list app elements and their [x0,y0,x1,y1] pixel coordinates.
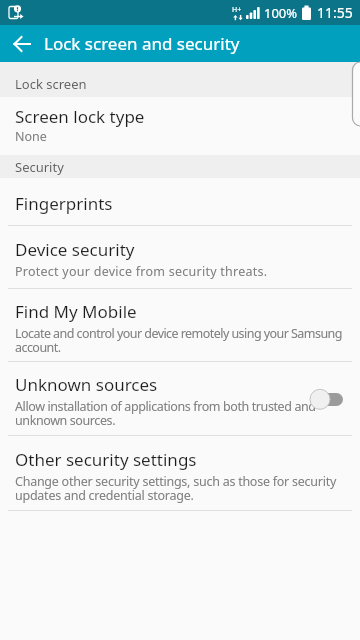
staticText: 11:55 [317,3,353,22]
staticText: Security [15,158,64,176]
button[interactable]: Fingerprints [0,178,360,225]
button[interactable] [0,25,44,62]
button[interactable]: Screen lock type [0,97,360,155]
staticText: Lock screen and security [44,32,240,55]
button[interactable]: Device security [0,226,360,288]
staticText: Device security [15,238,135,261]
staticText: Lock screen [15,75,87,93]
button[interactable] [309,387,343,411]
staticText: Allow installation of applications from … [15,398,316,428]
staticText: H+ [232,5,242,15]
staticText: Unknown sources [15,373,158,396]
staticText: Other security settings [15,448,197,471]
button[interactable]: Other security settings [0,436,360,510]
staticText: Screen lock type [15,105,145,128]
button[interactable]: Unknown sources [0,362,360,435]
staticText: Protect your device from security threat… [15,263,268,280]
staticText: Fingerprints [15,192,113,215]
staticText: 100% [264,4,298,22]
button[interactable]: Find My Mobile [0,289,360,361]
staticText: Find My Mobile [15,300,137,323]
staticText: Locate and control your device remotely … [15,325,342,355]
staticText: None [15,128,47,145]
staticText: Change other security settings, such as … [15,473,337,503]
